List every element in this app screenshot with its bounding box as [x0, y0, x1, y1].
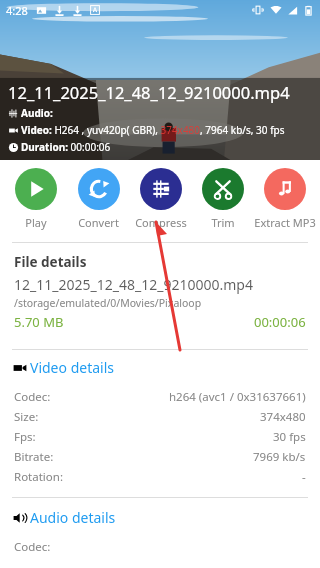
staticText: Play [25, 215, 47, 230]
staticText: Codec: [14, 539, 51, 555]
staticText: /storage/emulated/0/Movies/Pixaloop [14, 296, 202, 310]
button[interactable]: Trim [192, 166, 254, 232]
staticText: 00:00:06 [254, 313, 306, 331]
button[interactable]: Compress [130, 166, 192, 232]
staticText: Compress [135, 215, 187, 230]
staticText: 374x480 [260, 409, 306, 425]
staticText: Video: H264 , yuv420p( GBR), 374x480, 79… [21, 123, 285, 137]
staticText: - [302, 469, 306, 485]
staticText: Trim [211, 215, 235, 230]
staticText: Duration: 00:00:06 [21, 140, 111, 154]
button[interactable]: Audio details [0, 508, 320, 527]
staticText: File details [14, 253, 87, 271]
staticText: Codec: [14, 389, 51, 405]
staticText: Bitrate: [14, 449, 54, 465]
staticText: 7969 kb/s [253, 449, 306, 465]
staticText: h264 (avc1 / 0x31637661) [169, 389, 306, 405]
button[interactable]: Extract MP3 [254, 166, 316, 232]
staticText: Audio: [21, 106, 53, 120]
staticText: 4:28 [6, 3, 28, 18]
staticText: 5.70 MB [14, 313, 64, 331]
staticText: Extract MP3 [254, 215, 316, 230]
button[interactable]: Video details [0, 358, 320, 377]
staticText: Rotation: [14, 469, 63, 485]
staticText: Convert [78, 215, 119, 230]
staticText: Video details [30, 358, 114, 377]
staticText: Audio details [30, 508, 116, 527]
staticText: 30 fps [273, 429, 306, 445]
staticText: Size: [14, 409, 39, 425]
staticText: 12_11_2025_12_48_12_9210000.mp4 [8, 81, 290, 103]
button[interactable]: Convert [67, 166, 130, 232]
staticText: 12_11_2025_12_48_12_9210000.mp4 [14, 275, 253, 294]
button[interactable]: Play [4, 166, 67, 232]
staticText: Fps: [14, 429, 36, 445]
